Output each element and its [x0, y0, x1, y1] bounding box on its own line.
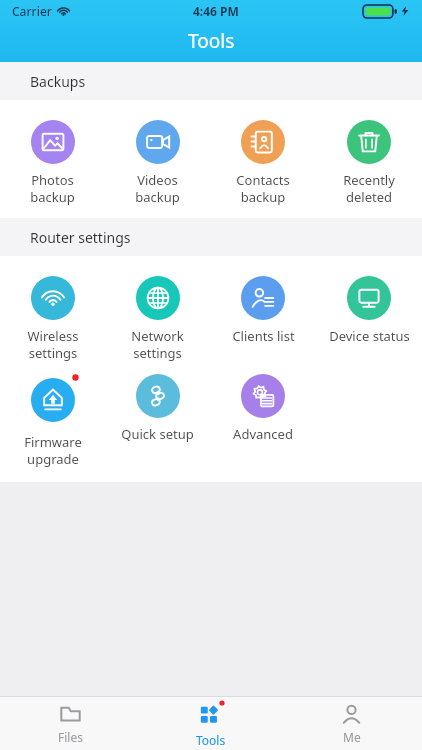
staticText: Device status — [329, 327, 410, 345]
staticText: Contacts backup — [236, 171, 290, 206]
staticText: Router settings — [30, 228, 131, 247]
staticText: Me — [343, 729, 361, 745]
button[interactable]: Firmware upgrade — [0, 372, 105, 468]
button[interactable]: Wireless settings — [0, 274, 105, 362]
button[interactable]: Advanced — [210, 372, 316, 443]
staticText: Files — [58, 729, 83, 745]
button[interactable]: Contacts backup — [210, 118, 316, 206]
staticText: Clients list — [232, 327, 295, 345]
button[interactable]: Files — [0, 697, 140, 750]
staticText: Photos backup — [30, 171, 75, 206]
button[interactable]: Clients list — [210, 274, 316, 345]
staticText: Tools — [196, 732, 226, 748]
button[interactable]: Network settings — [105, 274, 210, 362]
button[interactable]: Videos backup — [105, 118, 210, 206]
button[interactable]: Me — [281, 697, 422, 750]
staticText: Backups — [30, 72, 86, 91]
staticText: Advanced — [233, 425, 293, 443]
staticText: Network settings — [131, 327, 184, 362]
button[interactable]: Quick setup — [105, 372, 210, 443]
button[interactable]: Photos backup — [0, 118, 105, 206]
staticText: Tools — [188, 28, 235, 54]
staticText: Recently deleted — [343, 171, 395, 206]
staticText: Quick setup — [121, 425, 194, 443]
button[interactable]: Tools — [140, 697, 281, 750]
staticText: Videos backup — [135, 171, 180, 206]
staticText: 4:46 PM — [193, 3, 239, 19]
staticText: Carrier — [12, 3, 52, 19]
staticText: Wireless settings — [27, 327, 79, 362]
button[interactable]: Recently deleted — [316, 118, 422, 206]
staticText: Firmware upgrade — [24, 433, 82, 468]
button[interactable]: Device status — [316, 274, 422, 345]
